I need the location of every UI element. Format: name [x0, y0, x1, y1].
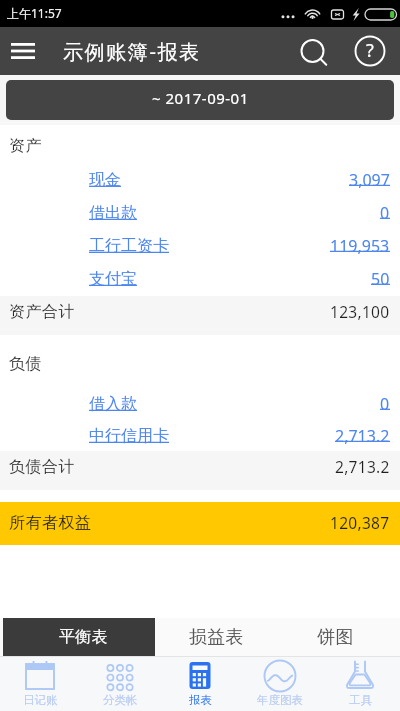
- staticText: 饼图: [317, 626, 354, 649]
- button[interactable]: 日记账: [0, 657, 80, 711]
- staticText: 示例账簿-报表: [63, 38, 201, 65]
- staticText: 0: [380, 202, 390, 224]
- staticText: 2,713.2: [335, 456, 390, 477]
- staticText: ?: [366, 38, 374, 63]
- staticText: 分类帐: [103, 693, 138, 707]
- staticText: 3,097: [349, 169, 390, 191]
- button[interactable]: Help: [339, 27, 400, 75]
- staticText: ~ 2017-09-01: [152, 88, 249, 108]
- button[interactable]: 支付宝: [0, 262, 400, 295]
- staticText: 负债合计: [9, 457, 75, 477]
- staticText: 日记账: [23, 693, 58, 707]
- staticText: 中行信用卡: [89, 426, 169, 446]
- button[interactable]: 平衡表: [3, 618, 155, 656]
- button[interactable]: 工具: [320, 657, 400, 711]
- staticText: 报表: [189, 693, 212, 707]
- staticText: 资产合计: [9, 302, 75, 322]
- staticText: 现金: [89, 170, 121, 190]
- staticText: 平衡表: [59, 627, 108, 647]
- staticText: 120,387: [330, 512, 390, 533]
- button[interactable]: 分类帐: [80, 657, 160, 711]
- button[interactable]: 中行信用卡: [0, 418, 400, 451]
- button[interactable]: 借出款: [0, 196, 400, 229]
- staticText: 损益表: [189, 626, 244, 649]
- staticText: 所有者权益: [9, 513, 91, 533]
- staticText: 资产: [9, 136, 42, 156]
- staticText: 119,953: [330, 235, 390, 257]
- staticText: 0: [380, 393, 390, 415]
- button[interactable]: 年度图表: [240, 657, 320, 711]
- staticText: 123,100: [330, 301, 390, 322]
- staticText: 年度图表: [257, 693, 303, 707]
- staticText: 50: [371, 268, 390, 290]
- staticText: 工行工资卡: [89, 236, 169, 256]
- staticText: 负债: [9, 354, 42, 374]
- button[interactable]: 工行工资卡: [0, 229, 400, 262]
- button[interactable]: 饼图: [280, 618, 390, 656]
- staticText: 工具: [349, 693, 372, 707]
- button[interactable]: ~ 2017-09-01: [6, 80, 394, 120]
- staticText: 2,713.2: [335, 425, 390, 447]
- staticText: 上午11:57: [7, 5, 62, 21]
- button[interactable]: 现金: [0, 163, 400, 196]
- button[interactable]: 借入款: [0, 385, 400, 418]
- staticText: 借入款: [89, 394, 137, 414]
- staticText: 借出款: [89, 203, 137, 223]
- staticText: 支付宝: [89, 269, 137, 289]
- button[interactable]: 报表: [160, 657, 240, 711]
- button[interactable]: Search: [290, 27, 339, 75]
- button[interactable]: 损益表: [160, 618, 272, 656]
- button[interactable]: Menu: [0, 27, 45, 75]
